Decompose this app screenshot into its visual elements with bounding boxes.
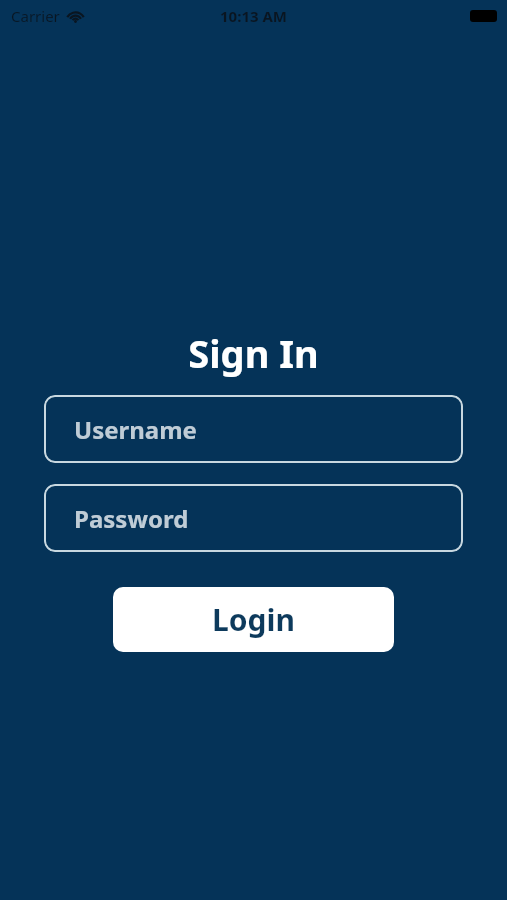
staticText: Login: [212, 599, 295, 640]
button[interactable]: Login: [113, 587, 394, 652]
button[interactable]: Username: [44, 395, 463, 463]
staticText: Password: [74, 502, 189, 535]
staticText: Username: [74, 413, 197, 446]
button[interactable]: Password: [44, 484, 463, 552]
staticText: Sign In: [188, 327, 319, 379]
staticText: 10:13 AM: [220, 6, 287, 26]
staticText: Carrier: [11, 6, 60, 26]
